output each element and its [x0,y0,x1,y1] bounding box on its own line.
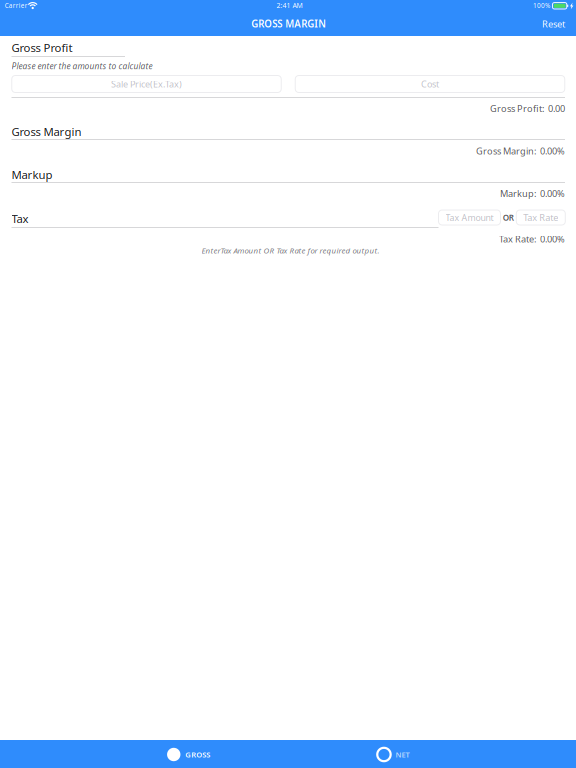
staticText: Cost [421,78,439,90]
staticText: NET [395,749,409,760]
button[interactable]: Reset [513,13,565,35]
staticText: Gross Profit: 0.00 [490,102,565,115]
staticText: Tax Rate: 0.00% [499,233,565,245]
staticText: 100% [533,1,550,10]
staticText: Markup: 0.00% [500,187,565,200]
staticText: Tax Rate [523,211,558,224]
staticText: Reset [542,17,565,30]
staticText: GROSS MARGIN [251,17,326,30]
staticText: Sale Price(Ex.Tax) [111,78,182,90]
staticText: Gross Profit [11,40,72,55]
staticText: OR [503,212,514,223]
button[interactable]: Sale Price(Ex.Tax) [12,75,281,92]
staticText: Tax Amount [445,211,493,223]
staticText: Please enter the amounts to calculate [11,60,152,72]
button[interactable]: Cost [295,75,565,92]
staticText: Gross Margin: 0.00% [476,145,565,157]
staticText: 2:41 AM [276,1,302,10]
staticText: Tax [11,211,28,226]
button[interactable]: Tax Amount [438,210,500,225]
button[interactable]: Tax Rate [516,210,565,225]
staticText: GROSS [185,749,210,760]
staticText: Gross Margin [11,124,81,139]
staticText: EnterTax Amount OR Tax Rate for required… [201,245,379,256]
staticText: Markup [11,167,52,182]
button[interactable]: NET [295,740,491,768]
staticText: Carrier [5,1,28,10]
button[interactable]: GROSS [90,740,286,768]
